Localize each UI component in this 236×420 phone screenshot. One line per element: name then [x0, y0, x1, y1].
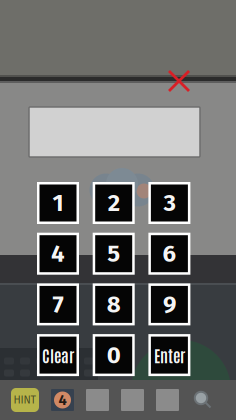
staticText: 9: [163, 290, 176, 319]
button[interactable]: Zoom: [192, 389, 214, 411]
button[interactable]: 2: [93, 182, 135, 224]
button[interactable]: 0: [93, 334, 135, 376]
staticText: 5: [107, 239, 120, 268]
button[interactable]: 1: [37, 182, 79, 224]
button[interactable]: Item, quantity 4: [51, 389, 74, 411]
button[interactable]: 6: [148, 233, 190, 275]
staticText: 4: [51, 239, 65, 268]
staticText: Clear: [42, 345, 74, 365]
button[interactable]: 5: [93, 233, 135, 275]
button[interactable]: 7: [37, 283, 79, 325]
button[interactable]: 4: [37, 233, 79, 275]
staticText: 1: [52, 189, 63, 217]
button[interactable]: Clear: [37, 334, 79, 376]
button[interactable]: HINT: [11, 388, 39, 412]
staticText: 7: [52, 290, 63, 319]
staticText: 8: [107, 290, 121, 319]
staticText: 4: [58, 391, 66, 409]
staticText: 2: [108, 189, 120, 217]
staticText: Enter: [154, 345, 185, 365]
button[interactable]: 3: [148, 182, 190, 224]
staticText: HINT: [13, 394, 36, 406]
button[interactable]: 8: [93, 283, 135, 325]
button[interactable]: 9: [148, 283, 190, 325]
staticText: 6: [162, 239, 176, 268]
button[interactable]: Enter: [148, 334, 190, 376]
button[interactable]: Close: [166, 68, 192, 94]
staticText: 0: [107, 341, 121, 369]
staticText: 3: [163, 189, 175, 217]
